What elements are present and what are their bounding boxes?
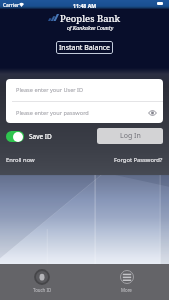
button[interactable]: Touch ID — [0, 264, 84, 293]
staticText: Please enter your User ID — [16, 86, 84, 94]
button[interactable]: Log In — [97, 128, 163, 144]
staticText: Instant Balance — [59, 43, 111, 53]
button[interactable]: Forgot Password? — [114, 156, 163, 164]
button[interactable]: More — [84, 264, 169, 293]
staticText: Save ID — [29, 132, 52, 141]
button[interactable]: Instant Balance — [56, 41, 113, 54]
button[interactable]: Please enter your User ID — [6, 79, 163, 101]
staticText: More — [121, 287, 132, 293]
button[interactable]: Save ID — [6, 131, 52, 142]
other: Show password — [148, 110, 157, 116]
staticText: Please enter your password — [16, 109, 89, 117]
staticText: of Kankakee County — [67, 25, 114, 32]
button[interactable]: Enroll now — [6, 156, 35, 164]
staticText: Log In — [120, 131, 141, 141]
button[interactable]: Please enter your password — [6, 102, 163, 123]
staticText: Touch ID — [33, 287, 52, 293]
staticText: Carrier — [3, 2, 19, 9]
staticText: 11:48 AM — [73, 2, 97, 9]
staticText: Peoples Bank — [60, 12, 121, 25]
